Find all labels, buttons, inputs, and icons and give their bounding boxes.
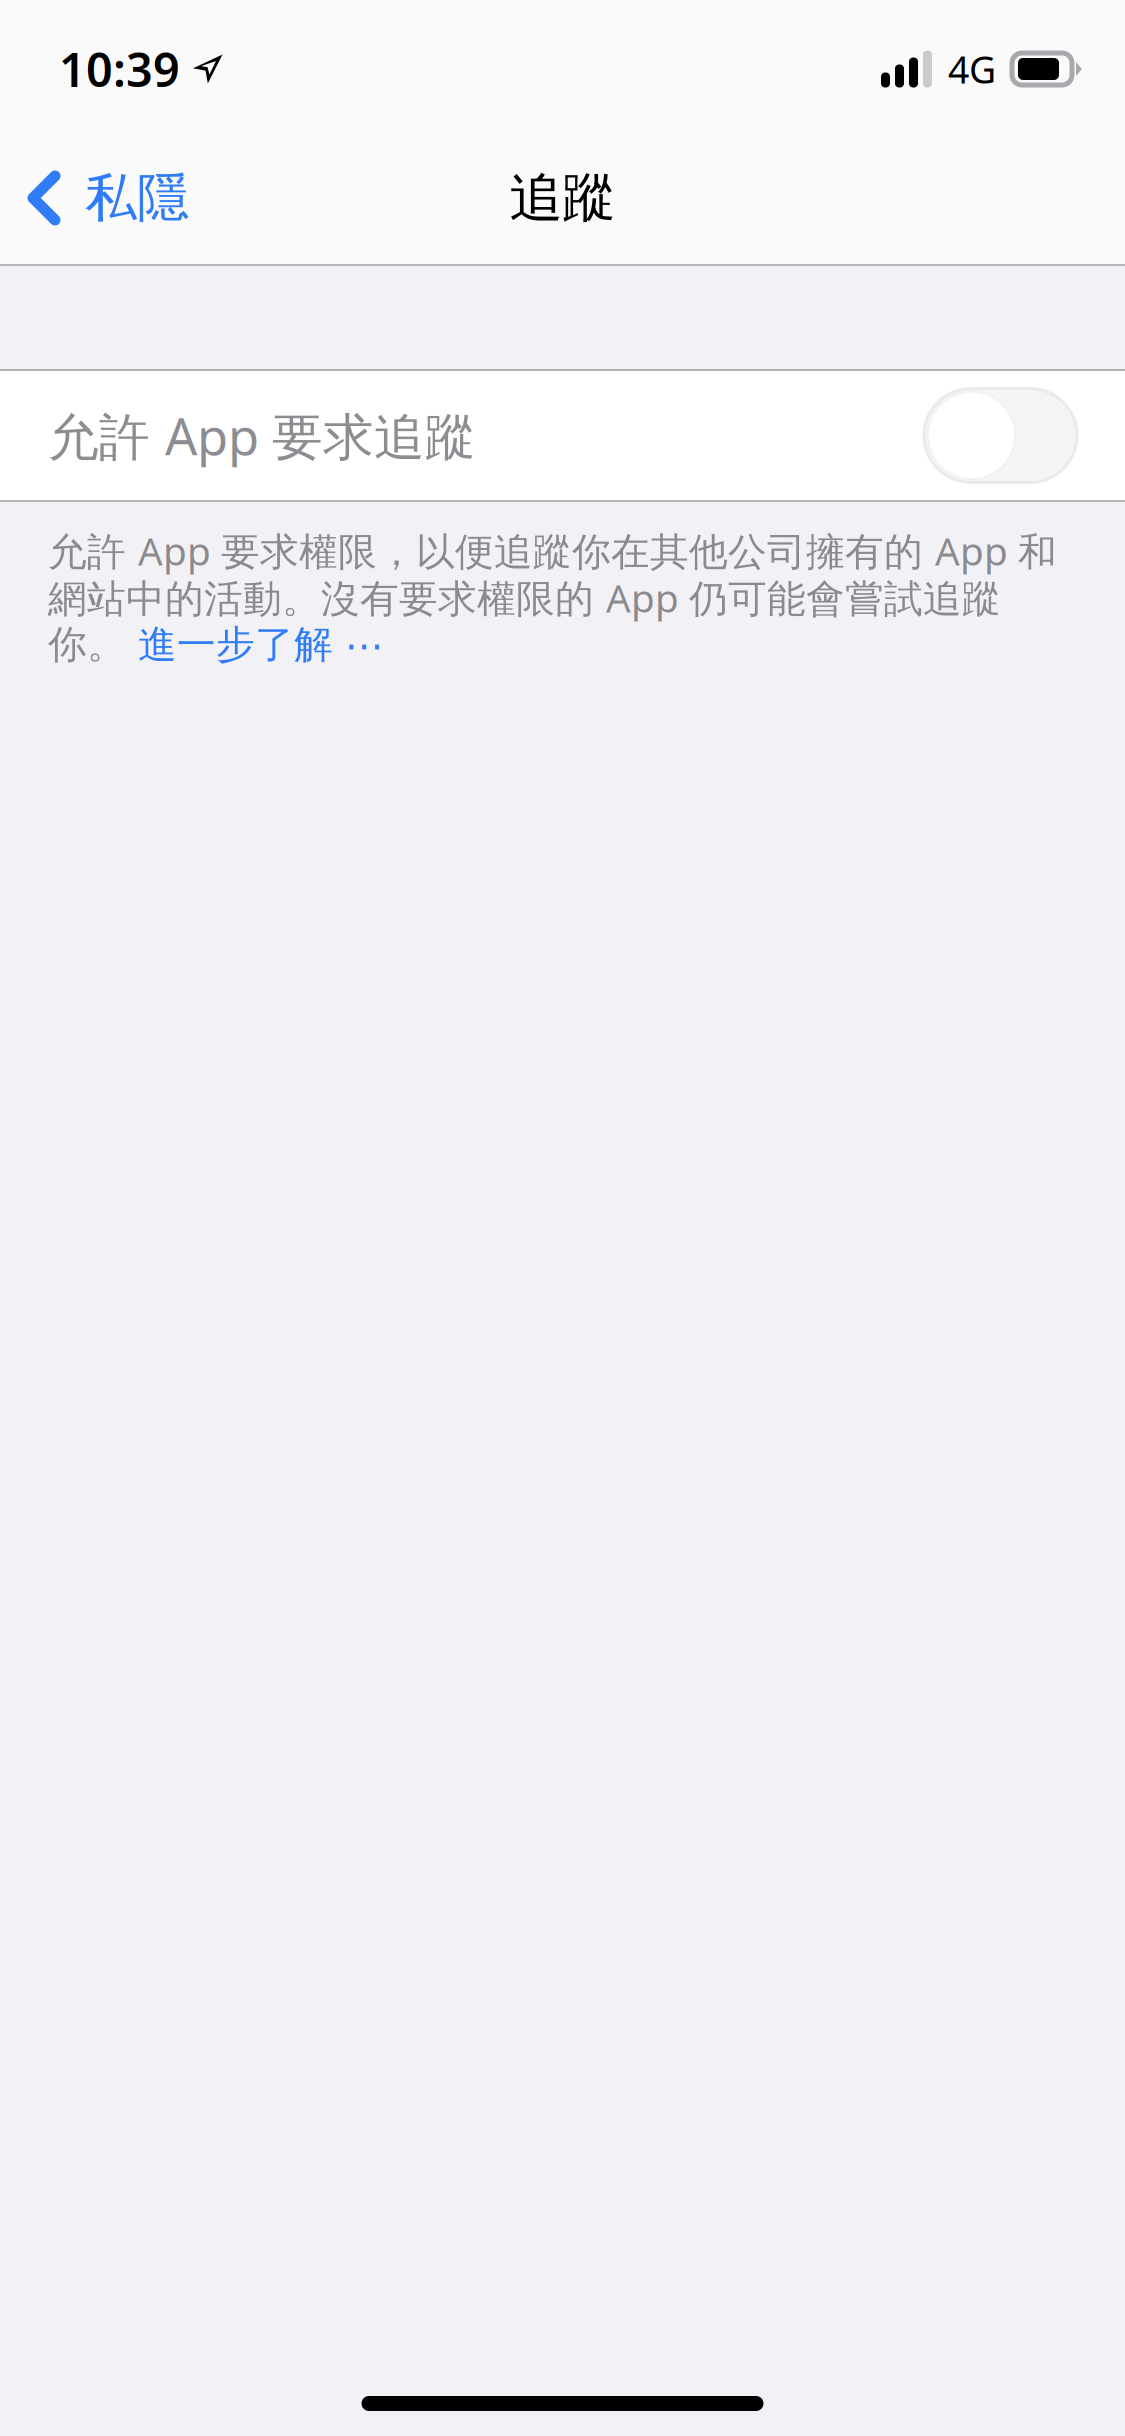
staticText: 進一步了解 ⋯: [138, 621, 384, 668]
staticText: 允許 App 要求追蹤: [48, 402, 476, 469]
button[interactable]: 進一步了解 ⋯: [138, 621, 384, 668]
staticText: 4G: [948, 44, 996, 94]
staticText: 10:39: [59, 38, 180, 100]
button[interactable]: 私隱: [0, 152, 215, 244]
staticText: 你。: [48, 621, 138, 668]
staticText: 網站中的活動。沒有要求權限的 App 仍可能會嘗試追蹤: [48, 572, 1001, 623]
staticText: 追蹤: [509, 165, 615, 231]
button[interactable]: 允許 App 要求追蹤: [924, 388, 1077, 482]
staticText: 私隱: [85, 166, 189, 230]
staticText: 允許 App 要求權限，以便追蹤你在其他公司擁有的 App 和: [48, 525, 1057, 576]
